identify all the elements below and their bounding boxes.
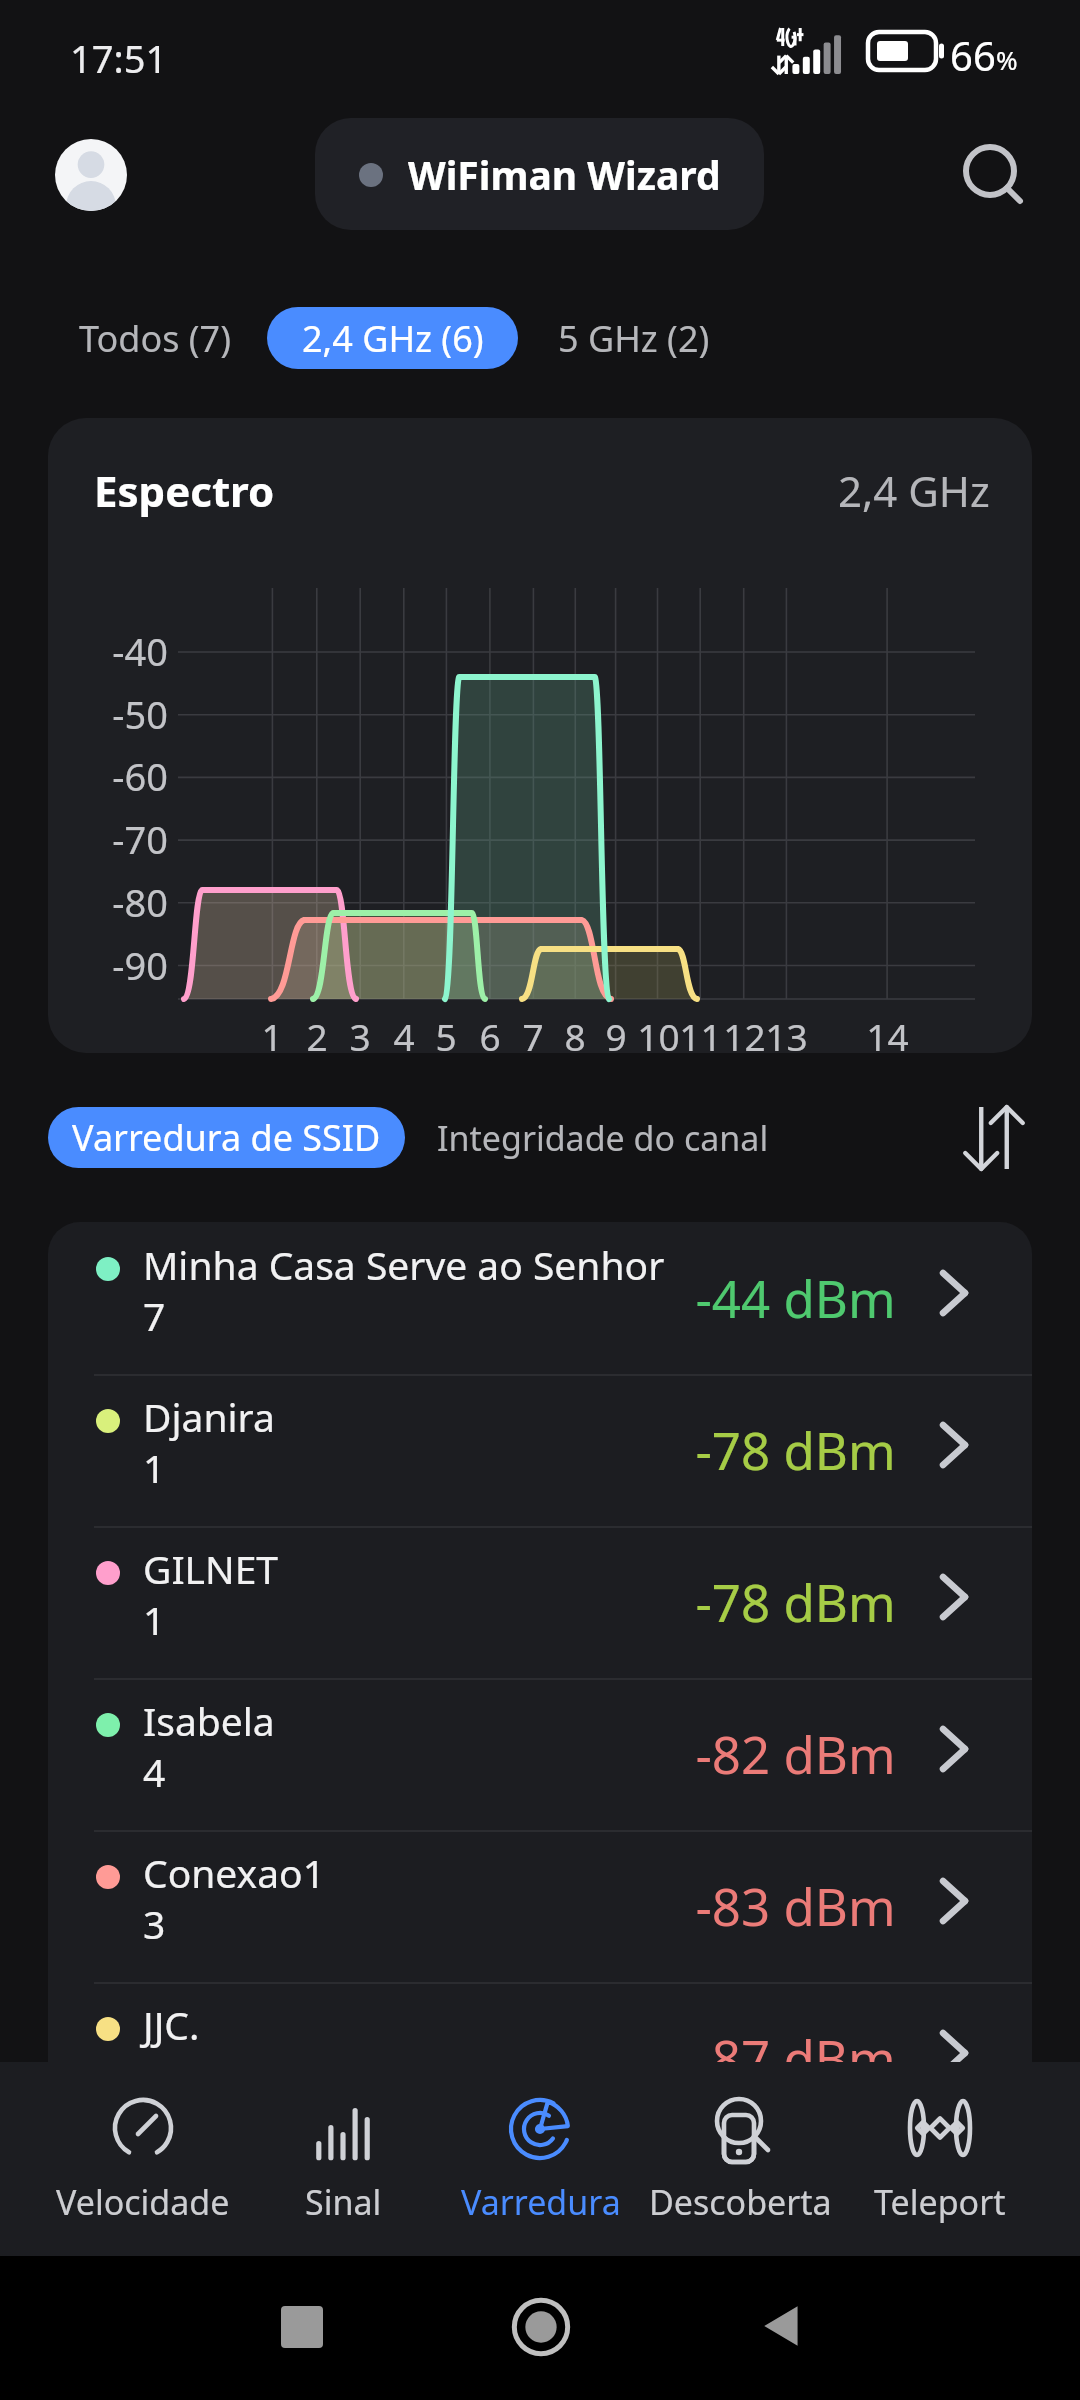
staticText: 4 <box>393 1011 415 1053</box>
staticText: 66 <box>950 28 996 82</box>
staticText: -78 dBm <box>695 1415 896 1484</box>
button[interactable]: Varredura de SSID <box>48 1107 405 1168</box>
button[interactable]: Descoberta <box>635 2089 845 2254</box>
staticText: 7 <box>522 1011 544 1053</box>
button[interactable]: Recents <box>281 2306 323 2348</box>
button[interactable]: Search <box>944 128 1040 224</box>
staticText: -87 dBm <box>695 2023 896 2062</box>
button[interactable]: Integridade do canal <box>425 1107 780 1168</box>
staticText: 5 <box>435 1011 457 1053</box>
button[interactable]: Todos (7) <box>64 307 245 369</box>
staticText: -80 <box>112 876 168 928</box>
staticText: 8 <box>564 1011 586 1053</box>
staticText: 1 <box>261 1011 283 1053</box>
staticText: -60 <box>112 750 168 802</box>
staticText: -50 <box>112 688 168 740</box>
staticText: 17:51 <box>70 32 168 84</box>
staticText: Espectro <box>94 462 275 519</box>
button[interactable]: Minha Casa Serve ao Senhor <box>48 1222 1032 1374</box>
button[interactable]: Velocidade <box>38 2089 248 2254</box>
button[interactable]: WiFiman Wizard <box>315 118 764 230</box>
staticText: 2,4 GHz <box>838 462 990 519</box>
staticText: Minha Casa Serve ao Senhor <box>143 1238 665 1291</box>
staticText: 3 <box>143 1897 166 1950</box>
button[interactable]: Sinal <box>238 2089 448 2254</box>
staticText: Teleport <box>874 2179 1006 2225</box>
staticText: 11 <box>679 1011 722 1053</box>
staticText: Descoberta <box>649 2179 832 2225</box>
staticText: Varredura de SSID <box>72 1113 381 1162</box>
staticText: 1 <box>143 1593 166 1646</box>
button[interactable]: Djanira <box>48 1374 1032 1526</box>
button[interactable]: Profile <box>55 139 127 211</box>
button[interactable]: Sort <box>950 1094 1038 1182</box>
staticText: 10 <box>637 1011 680 1053</box>
button[interactable]: JJC. <box>48 1982 1032 2062</box>
staticText: JJC. <box>143 1998 200 2051</box>
button[interactable]: Home <box>512 2298 570 2356</box>
button[interactable]: 5 GHz (2) <box>540 307 728 369</box>
staticText: 3 <box>349 1011 371 1053</box>
staticText: 2 <box>306 1011 328 1053</box>
staticText: 6 <box>479 1011 501 1053</box>
button[interactable]: Isabela <box>48 1678 1032 1830</box>
staticText: -40 <box>112 625 168 677</box>
button[interactable]: Varredura <box>436 2089 646 2254</box>
staticText: GILNET <box>143 1542 279 1595</box>
staticText: 7 <box>143 1289 166 1342</box>
staticText: Velocidade <box>56 2179 230 2225</box>
staticText: -78 dBm <box>695 1567 896 1636</box>
staticText: 2,4 GHz (6) <box>302 314 484 363</box>
staticText: Varredura <box>461 2179 621 2225</box>
staticText: Isabela <box>143 1694 275 1747</box>
staticText: % <box>996 42 1018 77</box>
button[interactable]: Back <box>757 2300 809 2352</box>
staticText: -82 dBm <box>695 1719 896 1788</box>
staticText: 1 <box>143 1441 166 1494</box>
staticText: -44 dBm <box>695 1263 896 1332</box>
button[interactable]: Conexao1 <box>48 1830 1032 1982</box>
staticText: WiFiman Wizard <box>408 148 721 201</box>
staticText: -83 dBm <box>695 1871 896 1940</box>
staticText: Todos (7) <box>79 314 231 363</box>
staticText: 9 <box>605 1011 627 1053</box>
staticText: Djanira <box>143 1390 275 1443</box>
staticText: 12 <box>723 1011 766 1053</box>
staticText: -70 <box>112 813 168 865</box>
staticText: -90 <box>112 939 168 991</box>
staticText: Conexao1 <box>143 1846 325 1899</box>
button[interactable]: Teleport <box>835 2089 1045 2254</box>
staticText: 4 <box>143 1745 166 1798</box>
staticText: 13 <box>765 1011 808 1053</box>
button[interactable]: GILNET <box>48 1526 1032 1678</box>
staticText: Sinal <box>305 2179 382 2225</box>
staticText: 14 <box>866 1011 909 1053</box>
staticText: Integridade do canal <box>437 1115 769 1161</box>
staticText: 5 GHz (2) <box>558 314 710 363</box>
button[interactable]: 2,4 GHz (6) <box>267 307 518 369</box>
